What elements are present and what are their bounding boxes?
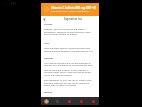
button[interactable]: Search bbox=[52, 97, 63, 105]
staticText: stomach upset occurs. Keep this and all … bbox=[44, 71, 91, 74]
button[interactable]: Scan bbox=[63, 97, 75, 105]
staticText: NDC 00000-0000 • dietary supplement bbox=[51, 10, 89, 13]
button[interactable]: Back bbox=[41, 16, 48, 22]
staticText: Inactive bbox=[44, 91, 53, 94]
staticText: Vitamin C tablets 500 mg USP • 60 ct bbox=[51, 6, 96, 10]
staticText: light and moisture. Do not use if the pr… bbox=[44, 82, 89, 85]
button[interactable]: Saved bbox=[75, 97, 87, 105]
staticText: Warnings bbox=[44, 57, 54, 60]
staticText: safety seal is broken or missing. bbox=[44, 84, 77, 87]
staticText: Vitamin C (ascorbic acid) 500 mg tablets… bbox=[44, 28, 88, 31]
button[interactable]: More bbox=[87, 97, 99, 105]
staticText: out of the reach of children. bbox=[44, 74, 73, 77]
staticText: Ask a doctor before use if you are pregn… bbox=[44, 62, 92, 65]
staticText: Stop use and ask a doctor if rash, nause… bbox=[44, 69, 89, 72]
staticText: Ingredient list bbox=[64, 17, 82, 21]
button[interactable]: Home bbox=[41, 97, 52, 105]
staticText: nursing. Do not exceed the recommended d… bbox=[44, 64, 94, 67]
staticText: Uses bbox=[44, 42, 49, 45]
staticText: helps maintain healthy connective tissue… bbox=[44, 47, 91, 50]
staticText: function and collagen formation. bbox=[44, 33, 78, 36]
staticText: antioxidant, supports normal immune syst… bbox=[44, 31, 91, 34]
staticText: Store between 15–30°C (59–86°F). Protect… bbox=[44, 79, 92, 82]
staticText: normal immune response • for daily dieta… bbox=[44, 50, 93, 53]
staticText: 10:24 ▮ ▮ ▮ bbox=[3, 1, 17, 4]
staticText: Purpose bbox=[44, 23, 53, 26]
